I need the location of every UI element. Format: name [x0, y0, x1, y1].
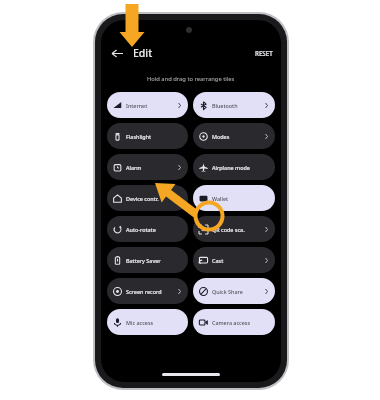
button[interactable]: Quick Share: [193, 278, 275, 304]
staticText: Cast: [212, 257, 224, 264]
staticText: Mic access: [126, 319, 154, 326]
button[interactable]: QR code sca.: [193, 216, 275, 242]
staticText: Hold and drag to rearrange tiles: [147, 75, 235, 83]
button[interactable]: Bluetooth: [193, 92, 275, 118]
button[interactable]: Screen record: [107, 278, 188, 304]
button[interactable]: Camera access: [193, 309, 275, 335]
button[interactable]: Wallet: [193, 185, 275, 211]
staticText: Internet: [126, 102, 148, 109]
staticText: Modes: [212, 133, 230, 140]
staticText: Airplane mode: [212, 164, 250, 171]
staticText: Wallet: [212, 195, 229, 202]
staticText: Device contr.: [126, 195, 159, 202]
button[interactable]: Modes: [193, 123, 275, 149]
staticText: Screen record: [126, 288, 162, 295]
button[interactable]: Internet: [107, 92, 188, 118]
button[interactable]: Alarm: [107, 154, 188, 180]
button[interactable]: RESET: [255, 49, 273, 57]
staticText: RESET: [255, 49, 273, 57]
staticText: Battery Saver: [126, 257, 161, 264]
staticText: Alarm: [126, 164, 142, 171]
button[interactable]: Auto-rotate: [107, 216, 188, 242]
staticText: QR code sca.: [212, 226, 245, 233]
staticText: Auto-rotate: [126, 226, 156, 233]
button[interactable]: Mic access: [107, 309, 188, 335]
staticText: Camera access: [212, 319, 251, 326]
button[interactable]: Device contr.: [107, 185, 188, 211]
staticText: Quick Share: [212, 288, 243, 295]
button[interactable]: Airplane mode: [193, 154, 275, 180]
staticText: Flashlight: [126, 133, 152, 140]
staticText: Bluetooth: [212, 102, 238, 109]
staticText: Edit: [133, 46, 153, 60]
button[interactable]: Battery Saver: [107, 247, 188, 273]
button[interactable]: Cast: [193, 247, 275, 273]
button[interactable]: Flashlight: [107, 123, 188, 149]
button[interactable]: Back: [106, 42, 128, 64]
